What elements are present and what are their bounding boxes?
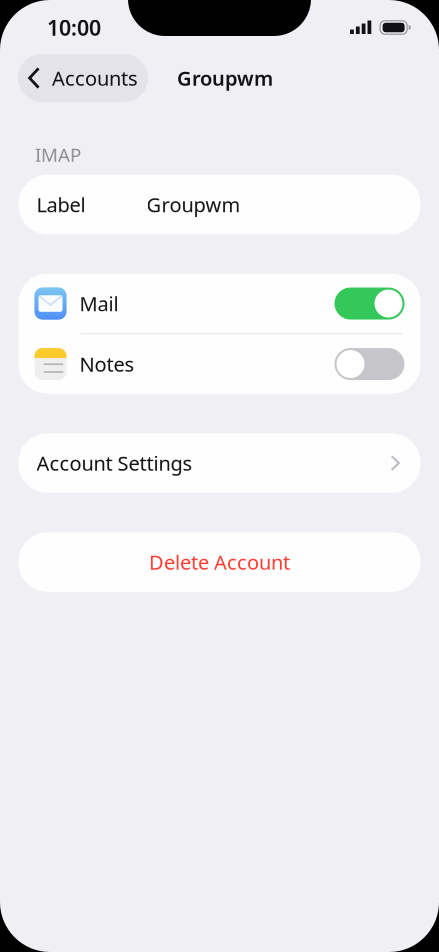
staticText: 10:00 bbox=[47, 13, 101, 42]
button[interactable]: Mail bbox=[18, 274, 420, 333]
staticText: IMAP bbox=[35, 142, 81, 167]
staticText: Mail bbox=[79, 290, 118, 317]
staticText: Groupwm bbox=[177, 65, 273, 91]
staticText: Label bbox=[36, 191, 85, 218]
staticText: Groupwm bbox=[146, 191, 240, 218]
button[interactable]: Notes bbox=[18, 334, 420, 394]
button[interactable]: Accounts bbox=[18, 54, 148, 102]
staticText: Account Settings bbox=[36, 450, 192, 476]
staticText: Accounts bbox=[52, 65, 138, 91]
staticText: Delete Account bbox=[149, 549, 290, 575]
button[interactable]: Delete Account bbox=[18, 532, 420, 592]
button[interactable]: Account Settings bbox=[18, 433, 420, 493]
staticText: Notes bbox=[79, 351, 134, 377]
